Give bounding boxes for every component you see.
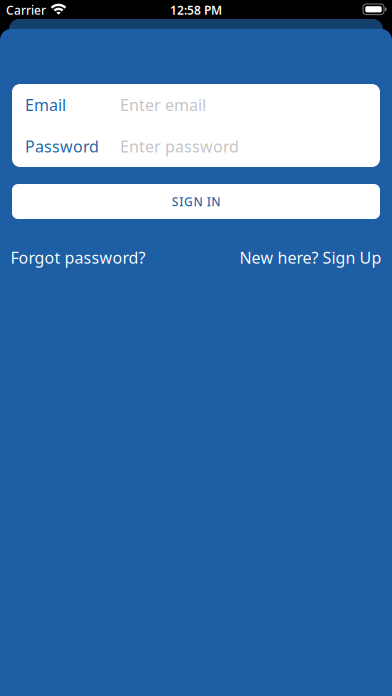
staticText: Email <box>25 94 66 115</box>
button[interactable]: New here? Sign Up <box>239 247 381 268</box>
staticText: New here? Sign Up <box>239 247 381 268</box>
staticText: SIGN IN <box>172 193 220 209</box>
button[interactable]: Forgot password? <box>10 247 145 268</box>
staticText: Carrier <box>6 2 46 18</box>
staticText: Forgot password? <box>10 247 145 268</box>
button[interactable]: Email <box>12 84 380 125</box>
button[interactable]: Password <box>12 125 380 167</box>
staticText: 12:58 PM <box>170 2 222 18</box>
staticText: Enter password <box>120 136 239 157</box>
staticText: Password <box>25 136 99 157</box>
button[interactable]: SIGN IN <box>12 184 380 219</box>
staticText: Enter email <box>120 94 206 115</box>
